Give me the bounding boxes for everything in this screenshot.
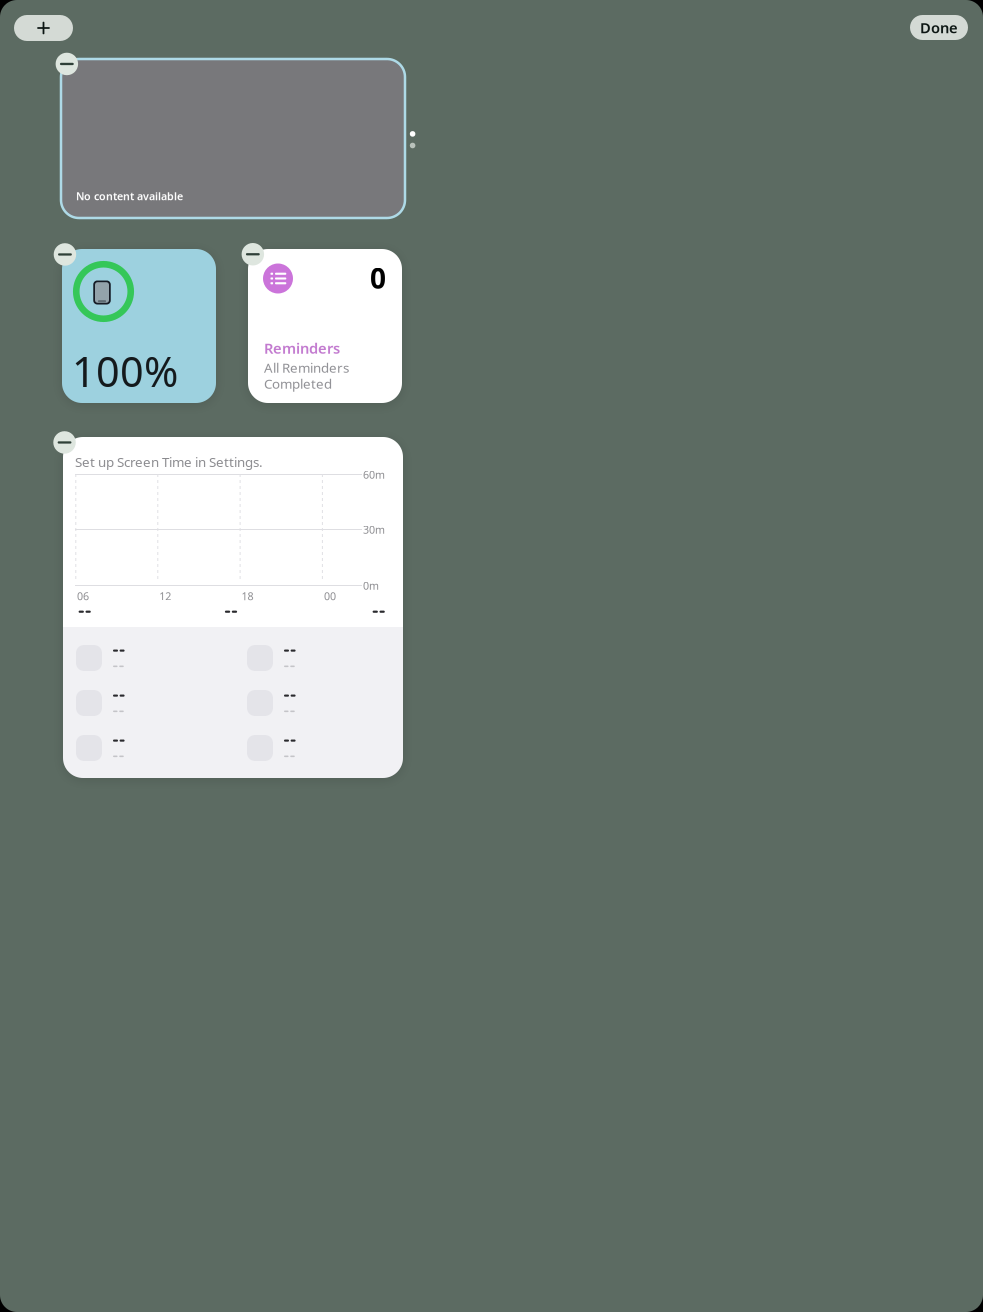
staticText: 100% [72, 344, 178, 398]
button[interactable]: Remove Widget [53, 431, 76, 454]
staticText: 60m [363, 467, 385, 482]
staticText: 06 [77, 589, 89, 603]
button[interactable]: Battery 100% [62, 249, 216, 403]
staticText: 18 [242, 589, 254, 603]
staticText: 30m [363, 522, 385, 537]
staticText: Done [920, 18, 958, 37]
staticText: No content available [76, 189, 183, 203]
button[interactable]: Reminders, all reminders completed [248, 249, 402, 403]
button[interactable]: Add Widget [14, 15, 73, 41]
button[interactable]: Remove Widget [54, 243, 76, 266]
staticText: Reminders [264, 338, 340, 358]
staticText: 00 [324, 589, 336, 603]
staticText: 0m [363, 578, 379, 593]
staticText: 12 [159, 589, 171, 603]
staticText: Set up Screen Time in Settings. [75, 453, 263, 471]
button[interactable]: Done [910, 15, 968, 40]
button[interactable]: Screen Time widget [63, 437, 403, 778]
staticText: Completed [264, 375, 332, 392]
staticText: 0 [370, 259, 386, 297]
button[interactable]: Remove Widget [56, 53, 78, 75]
button[interactable]: Widget, no content available [61, 59, 405, 218]
button[interactable]: Remove Widget [242, 243, 264, 265]
staticText: All Reminders [264, 359, 349, 376]
